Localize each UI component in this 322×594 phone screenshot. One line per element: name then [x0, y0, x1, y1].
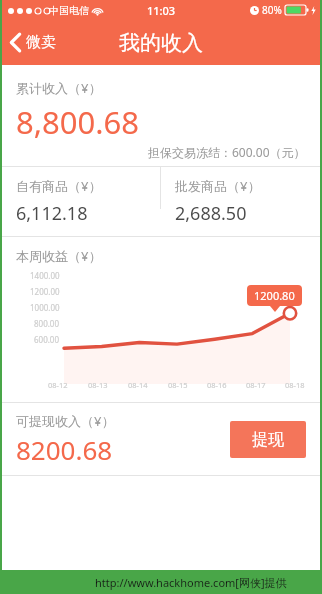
staticText: 我的收入 — [119, 30, 203, 56]
staticText: 提现 — [252, 430, 284, 450]
staticText: 08-13 — [88, 380, 108, 390]
staticText: 担保交易冻结：600.00（元） — [148, 144, 306, 160]
staticText: 6,112.18 — [16, 201, 88, 226]
staticText: 2,688.50 — [175, 201, 247, 226]
button[interactable]: 微卖 — [2, 27, 66, 58]
staticText: 80% — [262, 3, 282, 17]
staticText: 08-18 — [285, 380, 305, 390]
staticText: 自有商品（¥） — [16, 177, 102, 195]
staticText: 08-17 — [246, 380, 266, 390]
staticText: 800.00 — [34, 318, 60, 329]
staticText: 1400.00 — [30, 270, 60, 281]
staticText: 可提现收入（¥） — [16, 412, 115, 430]
staticText: 08-14 — [128, 380, 148, 390]
staticText: 08-12 — [48, 380, 68, 390]
staticText: 微卖 — [26, 33, 56, 52]
staticText: 批发商品（¥） — [175, 177, 261, 195]
staticText: 累计收入（¥） — [16, 79, 102, 97]
staticText: 1200.00 — [30, 286, 60, 297]
staticText: 本周收益（¥） — [16, 247, 102, 265]
staticText: 08-15 — [168, 380, 188, 390]
button[interactable]: 提现 — [230, 421, 306, 458]
staticText: 08-16 — [207, 380, 227, 390]
staticText: 8200.68 — [16, 432, 113, 467]
staticText: 11:03 — [147, 3, 176, 18]
staticText: 8,800.68 — [16, 101, 140, 143]
staticText: http://www.hackhome.com[网侠]提供 — [95, 575, 287, 590]
staticText: 1200.80 — [254, 288, 295, 303]
staticText: 600.00 — [34, 334, 60, 345]
staticText: 中国电信 — [49, 4, 89, 17]
staticText: 1000.00 — [30, 302, 60, 313]
